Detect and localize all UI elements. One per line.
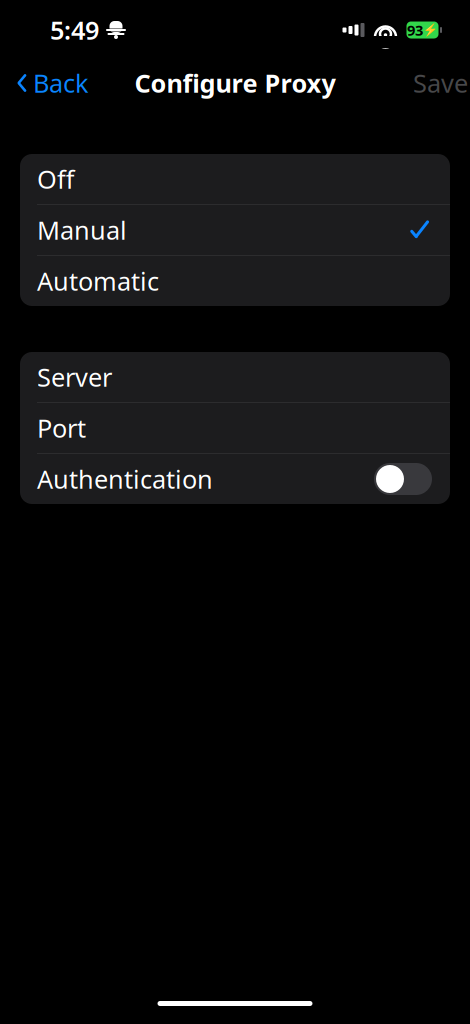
button[interactable]: Automatic <box>20 256 450 306</box>
staticText: Authentication <box>37 462 213 496</box>
button[interactable]: Off <box>20 154 450 204</box>
staticText: 5:49 <box>50 13 99 47</box>
button[interactable]: Server <box>20 352 450 402</box>
button[interactable]: Authentication <box>20 454 450 504</box>
staticText: ⚡ <box>423 23 438 37</box>
staticText: Off <box>37 162 74 196</box>
button[interactable]: Manual <box>20 205 450 255</box>
staticText: Server <box>37 360 112 394</box>
staticText: Back <box>33 66 89 100</box>
button[interactable]: Back <box>6 58 99 108</box>
staticText: 93 <box>407 20 423 40</box>
button[interactable]: Save <box>413 58 468 108</box>
staticText: Port <box>37 411 86 445</box>
staticText: Configure Proxy <box>134 66 335 100</box>
staticText: Automatic <box>37 264 159 298</box>
staticText: Manual <box>37 213 127 247</box>
staticText: Save <box>413 66 468 100</box>
button[interactable]: Port <box>20 403 450 453</box>
